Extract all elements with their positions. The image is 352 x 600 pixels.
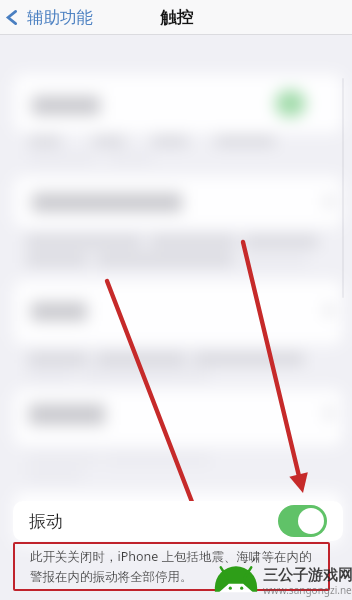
button[interactable]: 振动 (13, 501, 343, 541)
staticText: 辅助功能 (27, 7, 93, 28)
staticText: www.sangongzi.net (263, 583, 352, 597)
other: Vibration toggle on (278, 505, 327, 537)
staticText: 三公子游戏网 (263, 566, 352, 585)
button[interactable]: 辅助功能 (2, 7, 93, 28)
staticText: 振动 (29, 511, 63, 532)
staticText: 触控 (160, 7, 193, 28)
staticText: 此开关关闭时，iPhone 上包括地震、海啸等在内的 警报在内的振动将全部停用。 (30, 548, 312, 585)
